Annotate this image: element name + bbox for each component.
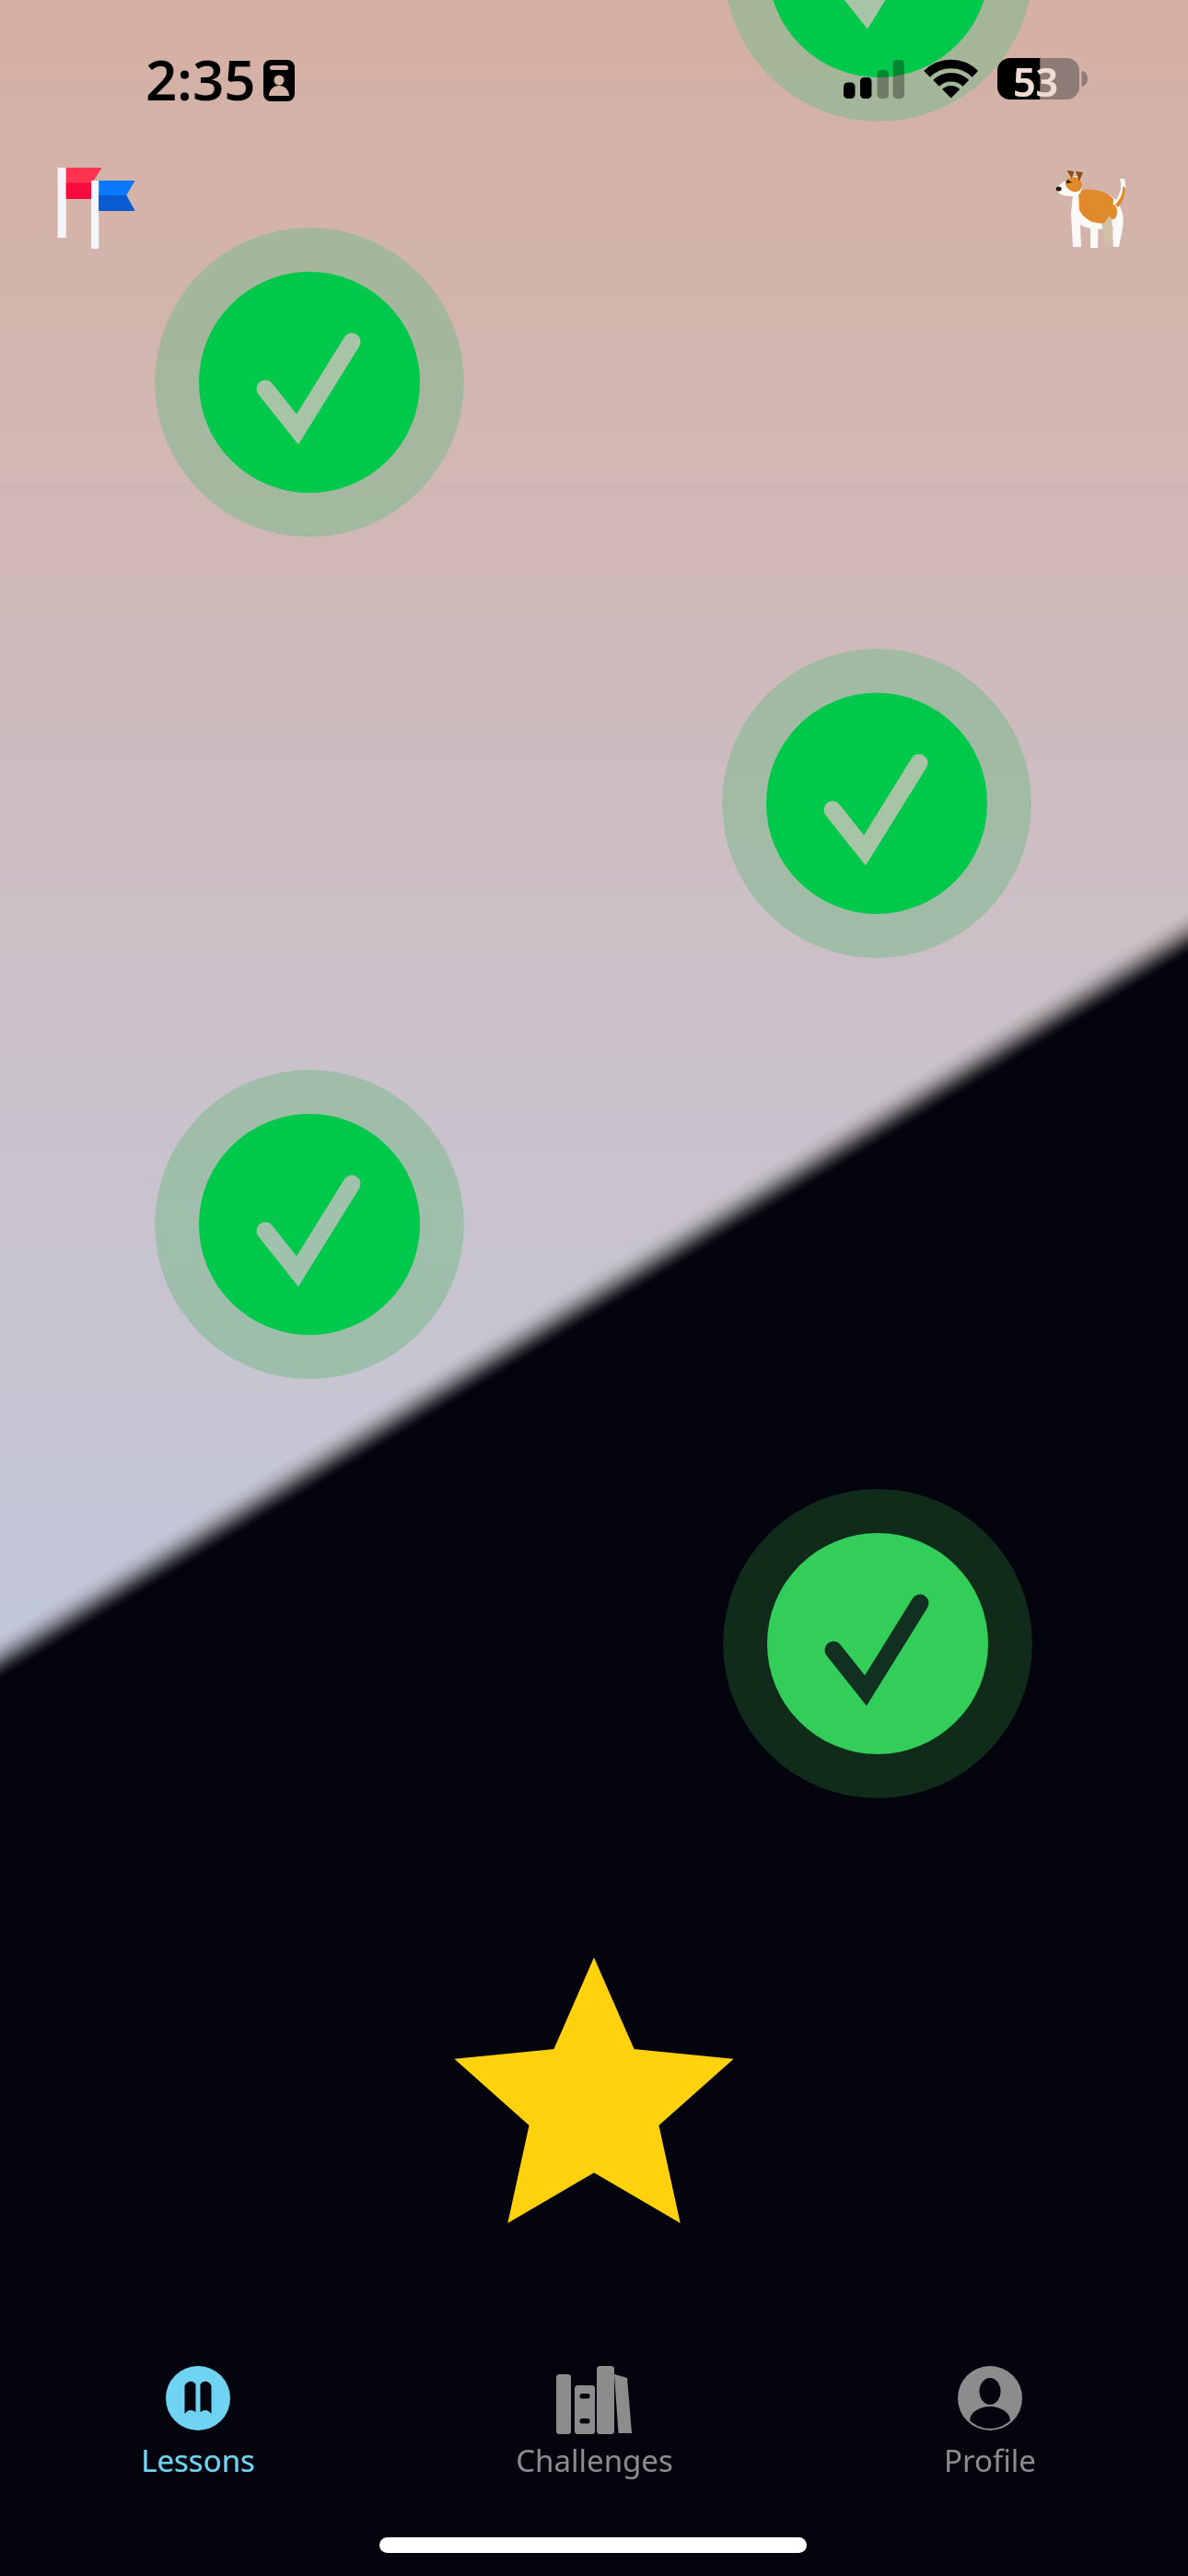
button[interactable]: Lesson 1, completed [724, 0, 1033, 122]
button[interactable]: Language flags [55, 164, 138, 247]
button[interactable]: Lesson 2, completed [155, 228, 464, 537]
button[interactable]: Lessons [0, 2366, 396, 2481]
button[interactable]: Profile [792, 2366, 1188, 2481]
button[interactable]: Lesson 5, completed [723, 1489, 1032, 1798]
button[interactable]: Bonus reward [447, 1957, 741, 2252]
button[interactable]: Challenges [396, 2366, 792, 2481]
staticText: 53 [1013, 54, 1059, 109]
button[interactable]: Lesson 3, completed [722, 649, 1031, 958]
staticText: 2:35 [146, 41, 256, 117]
staticText: Lessons [141, 2440, 255, 2481]
button[interactable]: Lesson 4, completed [155, 1070, 464, 1379]
staticText: Profile [944, 2440, 1036, 2481]
staticText: Challenges [516, 2440, 673, 2481]
button[interactable]: Streak mascot [1053, 162, 1130, 251]
